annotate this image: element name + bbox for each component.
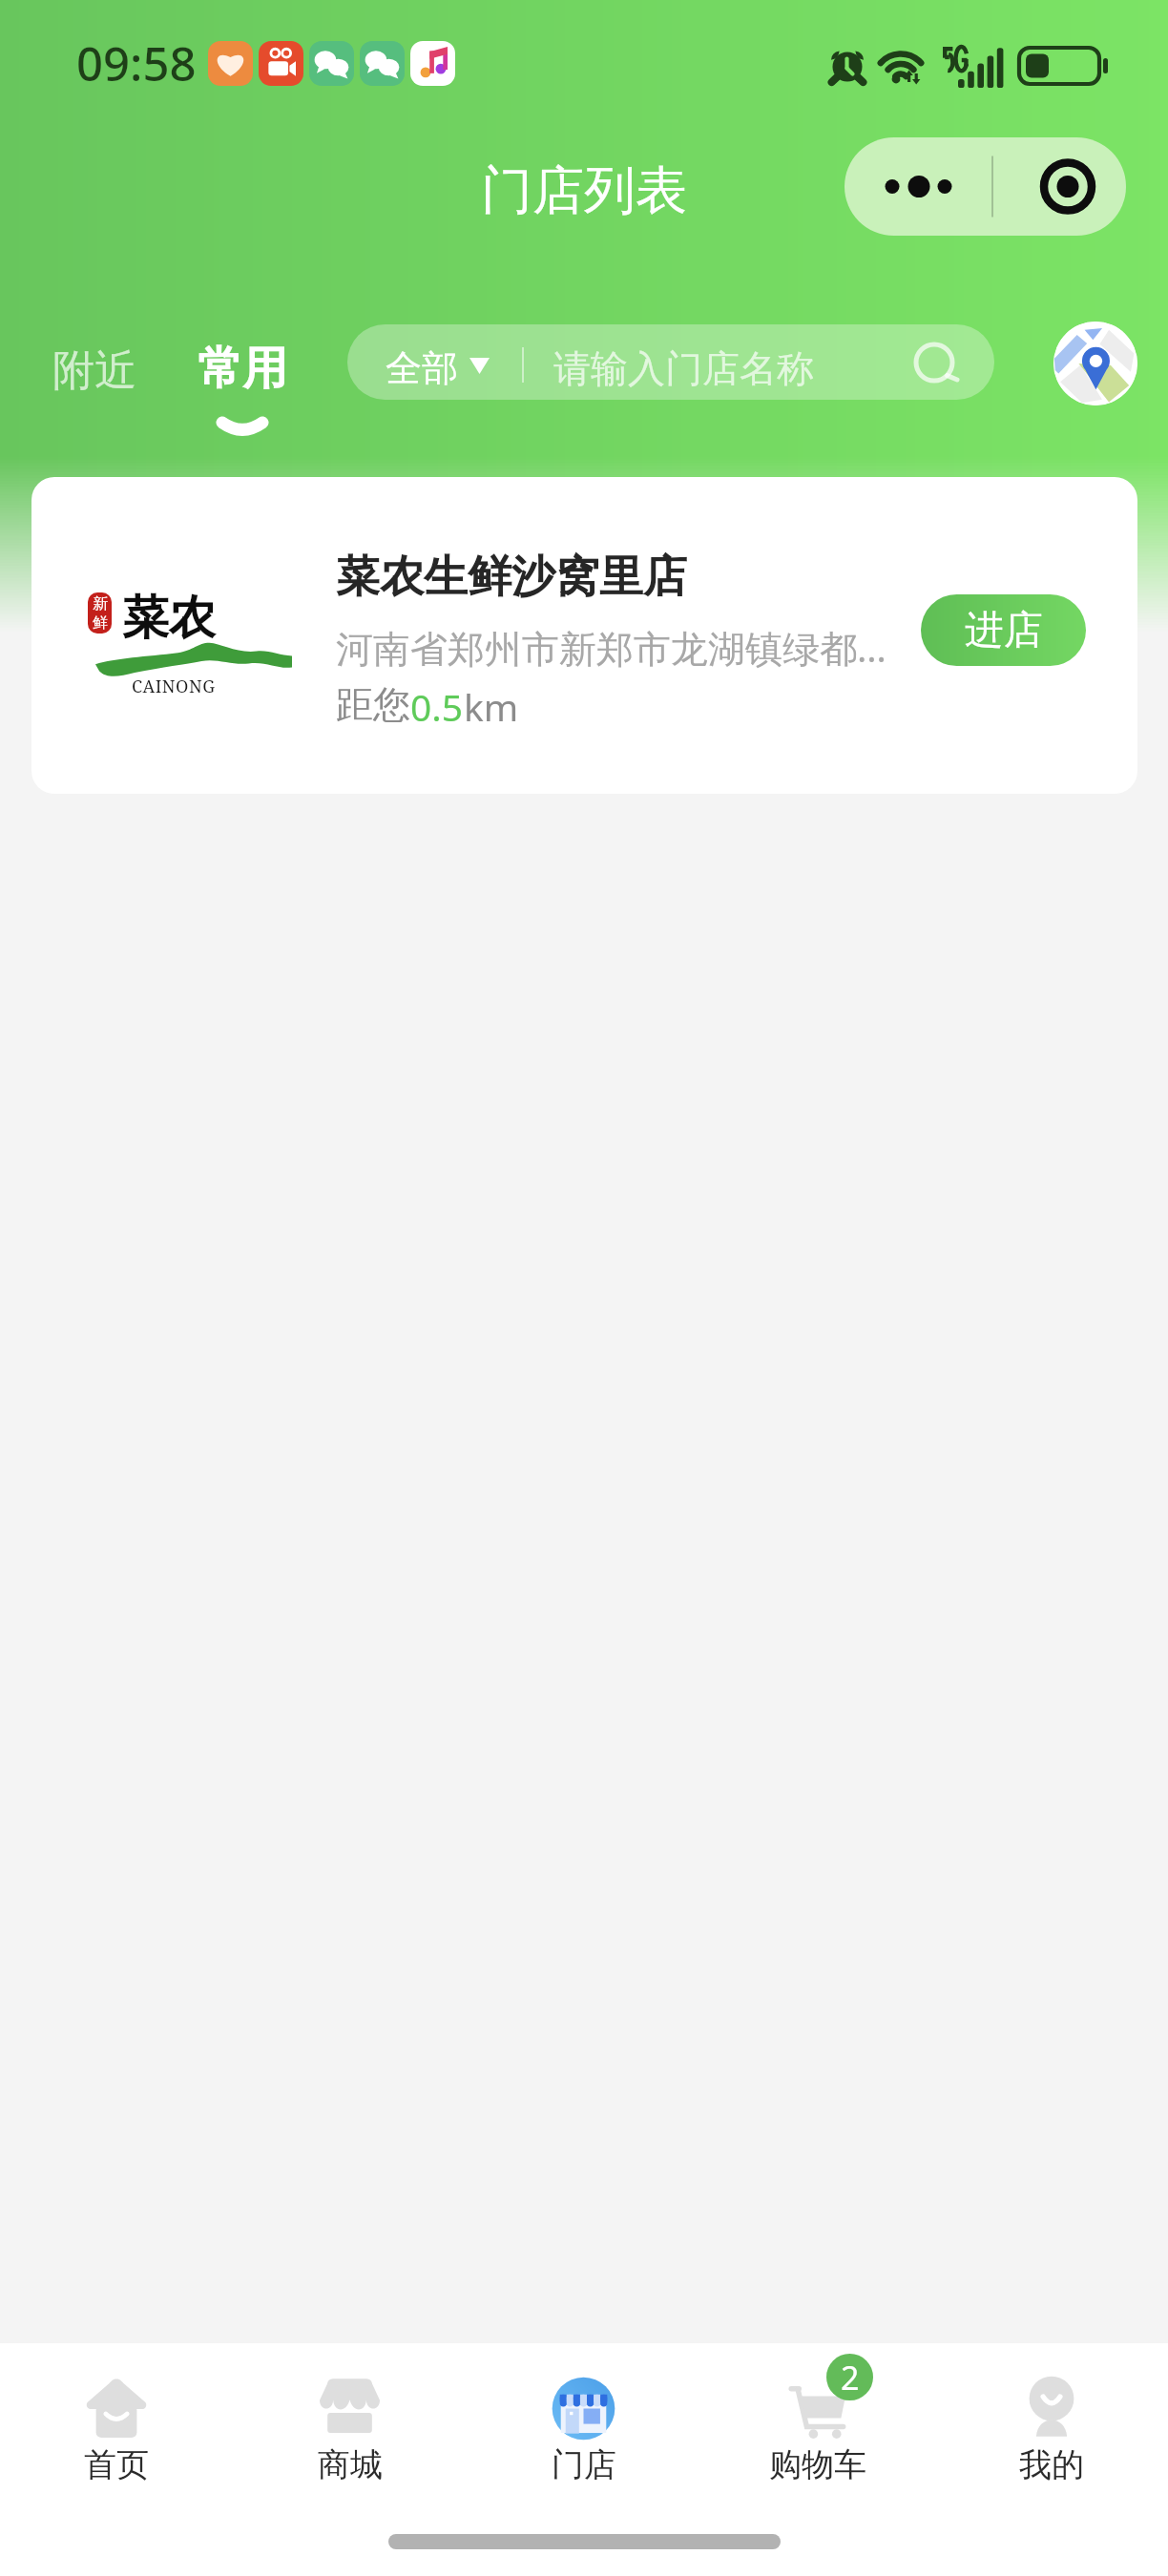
button[interactable]: 商城 — [233, 2343, 467, 2576]
staticText: 购物车 — [769, 2444, 866, 2485]
staticText: 菜农 — [122, 589, 216, 648]
button[interactable]: 全部 — [347, 324, 994, 400]
staticText: 新 — [93, 594, 108, 613]
staticText: 进店 — [965, 606, 1043, 655]
button[interactable]: More options — [845, 137, 1126, 236]
button[interactable]: 常用 — [182, 333, 302, 444]
button[interactable]: 新 — [31, 477, 1137, 794]
staticText: 门店列表 — [481, 158, 687, 223]
button[interactable]: 门店 — [467, 2343, 700, 2576]
staticText: 2 — [841, 2356, 860, 2399]
staticText: km — [464, 681, 519, 732]
staticText: 附近 — [52, 344, 136, 397]
staticText: 河南省郑州市新郑市龙湖镇绿都… — [336, 622, 908, 673]
staticText: 我的 — [1019, 2444, 1084, 2485]
button[interactable]: 首页 — [0, 2343, 233, 2576]
staticText: 菜农生鲜沙窝里店 — [336, 550, 687, 605]
staticText: CAINONG — [132, 675, 216, 698]
staticText: 常用 — [198, 341, 287, 397]
button[interactable]: 2 — [700, 2343, 934, 2576]
staticText: 0.5 — [410, 681, 464, 732]
button[interactable]: 进店 — [921, 594, 1086, 666]
staticText: 09:58 — [76, 31, 197, 95]
staticText: 鲜 — [93, 613, 108, 633]
staticText: 首页 — [84, 2444, 149, 2485]
staticText: 距您 — [336, 681, 410, 728]
button[interactable]: 我的 — [934, 2343, 1168, 2576]
button[interactable]: 附近 — [37, 335, 152, 406]
button[interactable]: Map — [1053, 322, 1137, 405]
staticText: 门店 — [552, 2444, 616, 2485]
staticText: 全部 — [386, 345, 458, 391]
staticText: 请输入门店名称 — [553, 345, 814, 392]
staticText: 商城 — [318, 2444, 383, 2485]
